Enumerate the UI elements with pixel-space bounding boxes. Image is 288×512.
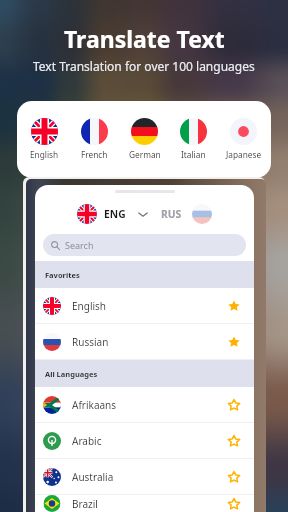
staticText: Favorites <box>45 270 80 280</box>
staticText: English <box>30 149 59 160</box>
staticText: Arabic <box>72 434 102 448</box>
staticText: Search <box>65 239 94 251</box>
button[interactable]: French <box>70 118 119 160</box>
button[interactable]: Italian <box>169 118 218 160</box>
button[interactable]: Afrikaans <box>35 387 254 422</box>
staticText: Japanese <box>226 149 262 160</box>
button[interactable]: Arabic <box>35 423 254 458</box>
button[interactable]: Russian <box>35 324 254 359</box>
staticText: French <box>81 149 108 160</box>
staticText: ENG <box>104 207 126 221</box>
staticText: RUS <box>161 207 182 221</box>
button[interactable]: English <box>20 118 69 160</box>
staticText: All Languages <box>45 369 98 379</box>
staticText: Translate Text <box>64 23 225 54</box>
button[interactable]: Favorite <box>222 294 246 318</box>
button[interactable]: Japanese <box>219 118 268 160</box>
button[interactable]: ENG <box>35 202 254 226</box>
button[interactable]: Search <box>43 234 246 256</box>
button[interactable]: Favorite <box>222 393 246 417</box>
staticText: Text Translation for over 100 languages <box>33 58 255 74</box>
button[interactable]: Brazil <box>35 495 254 512</box>
staticText: Brazil <box>72 497 98 511</box>
staticText: Italian <box>181 149 206 160</box>
button[interactable]: Favorite <box>222 330 246 354</box>
staticText: Australia <box>72 470 114 484</box>
staticText: Afrikaans <box>72 398 117 412</box>
staticText: Russian <box>72 335 109 349</box>
staticText: German <box>129 149 161 160</box>
staticText: English <box>72 299 107 313</box>
button[interactable]: Favorite <box>222 429 246 453</box>
button[interactable]: Favorite <box>222 495 246 512</box>
button[interactable]: Australia <box>35 459 254 494</box>
button[interactable]: Favorite <box>222 465 246 489</box>
button[interactable]: English <box>35 288 254 323</box>
button[interactable]: German <box>120 118 169 160</box>
